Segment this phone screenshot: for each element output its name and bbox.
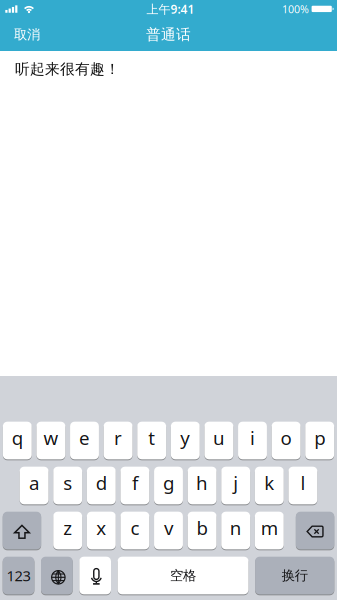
staticText: j (233, 470, 238, 495)
staticText: g (163, 470, 174, 495)
staticText: h (196, 470, 208, 495)
staticText: s (63, 470, 72, 495)
staticText: b (197, 515, 208, 540)
staticText: n (230, 515, 242, 540)
staticText: c (130, 515, 139, 540)
button[interactable]: c (120, 512, 149, 549)
button[interactable]: j (221, 467, 250, 504)
staticText: 听起来很有趣！ (15, 60, 120, 78)
button[interactable]: y (171, 422, 200, 459)
staticText: 123 (7, 566, 31, 585)
staticText: w (43, 425, 58, 450)
button[interactable]: k (255, 467, 284, 504)
staticText: q (12, 425, 23, 450)
staticText: f (132, 470, 138, 495)
button[interactable]: t (137, 422, 166, 459)
button[interactable]: Dictate (79, 557, 111, 594)
button[interactable]: b (188, 512, 217, 549)
staticText: i (250, 425, 255, 450)
staticText: z (63, 515, 72, 540)
button[interactable]: h (188, 467, 216, 504)
staticText: m (261, 515, 278, 540)
button[interactable]: a (20, 467, 48, 504)
staticText: d (96, 470, 107, 495)
staticText: 取消 (14, 26, 40, 43)
button[interactable]: n (221, 512, 250, 549)
staticText: k (264, 470, 274, 495)
staticText: p (314, 425, 325, 450)
button[interactable]: p (305, 422, 334, 459)
button[interactable]: l (288, 467, 317, 504)
button[interactable]: f (120, 467, 149, 504)
button[interactable]: Next keyboard (41, 557, 73, 594)
staticText: l (300, 470, 305, 495)
staticText: y (180, 425, 190, 450)
staticText: x (96, 515, 106, 540)
button[interactable]: 空格 (118, 557, 248, 594)
staticText: o (281, 425, 292, 450)
button[interactable]: o (272, 422, 300, 459)
staticText: 100% (282, 2, 309, 16)
staticText: t (148, 425, 155, 450)
button[interactable]: x (87, 512, 116, 549)
button[interactable]: w (36, 422, 65, 459)
button[interactable]: e (70, 422, 99, 459)
button[interactable]: d (87, 467, 116, 504)
button[interactable]: z (53, 512, 82, 549)
button[interactable]: r (104, 422, 133, 459)
button[interactable]: 换行 (255, 557, 334, 594)
staticText: 上午9:41 (146, 1, 194, 17)
staticText: a (29, 470, 39, 495)
staticText: 换行 (282, 567, 308, 584)
button[interactable]: g (154, 467, 183, 504)
button[interactable]: m (255, 512, 284, 549)
button[interactable]: u (204, 422, 233, 459)
button[interactable]: v (154, 512, 183, 549)
staticText: v (164, 515, 173, 540)
staticText: 普通话 (146, 25, 191, 43)
staticText: u (213, 425, 225, 450)
button[interactable]: Delete (296, 512, 334, 549)
staticText: e (79, 425, 90, 450)
button[interactable]: i (238, 422, 267, 459)
button[interactable]: 取消 (14, 26, 40, 43)
button[interactable]: s (53, 467, 82, 504)
staticText: r (114, 425, 122, 450)
button[interactable]: 123 (3, 557, 34, 594)
button[interactable]: q (3, 422, 32, 459)
staticText: 空格 (170, 567, 196, 584)
button[interactable]: Shift (3, 512, 41, 549)
